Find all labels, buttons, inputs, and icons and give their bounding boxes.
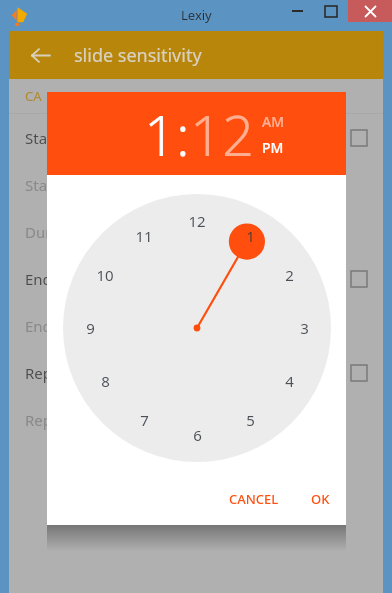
- button[interactable]: End: [9, 302, 383, 349]
- button[interactable]: PM: [262, 138, 284, 157]
- staticText: Sta: [25, 128, 48, 148]
- button[interactable]: Maximize: [314, 0, 348, 22]
- button[interactable]: 12: [181, 205, 213, 237]
- button[interactable]: 10: [89, 259, 121, 291]
- button[interactable]: 3: [288, 312, 320, 344]
- staticText: 5: [246, 410, 255, 430]
- staticText: 8: [101, 371, 110, 391]
- staticText: 11: [135, 226, 153, 246]
- staticText: 4: [285, 371, 294, 391]
- staticText: 7: [140, 410, 149, 430]
- button[interactable]: 8: [89, 365, 121, 397]
- button[interactable]: 2: [273, 259, 305, 291]
- staticText: Lexiy: [181, 6, 212, 24]
- staticText: 3: [300, 318, 309, 338]
- button[interactable]: 9: [74, 312, 106, 344]
- button[interactable]: 1: [144, 96, 176, 172]
- staticText: End: [25, 269, 52, 289]
- staticText: 9: [86, 318, 95, 338]
- staticText: End: [25, 316, 52, 336]
- button[interactable]: End: [9, 255, 383, 302]
- button[interactable]: Rep: [9, 349, 383, 396]
- button[interactable]: 6: [181, 419, 213, 451]
- staticText: CANCEL: [229, 490, 279, 508]
- staticText: 12: [188, 211, 206, 231]
- staticText: Rep: [25, 363, 53, 383]
- button[interactable]: 4: [273, 365, 305, 397]
- button[interactable]: 1: [234, 220, 266, 252]
- staticText: Sta: [25, 175, 48, 195]
- staticText: :: [176, 96, 190, 172]
- button[interactable]: Dur: [9, 208, 383, 255]
- button[interactable]: Sta: [9, 114, 383, 161]
- button[interactable]: 12: [190, 96, 254, 172]
- staticText: slide sensitivity: [74, 43, 202, 68]
- button[interactable]: CANCEL: [219, 481, 289, 517]
- staticText: Dur: [25, 222, 52, 242]
- button[interactable]: Sta: [9, 161, 383, 208]
- staticText: Rep: [25, 410, 53, 430]
- staticText: CA: [25, 87, 42, 105]
- button[interactable]: Close: [348, 0, 392, 22]
- button[interactable]: 11: [128, 220, 160, 252]
- button[interactable]: 5: [234, 404, 266, 436]
- staticText: 6: [193, 425, 202, 445]
- staticText: 1: [246, 226, 255, 246]
- button[interactable]: AM: [262, 112, 285, 131]
- button[interactable]: Rep: [9, 396, 383, 443]
- button[interactable]: Minimize: [280, 0, 314, 22]
- staticText: 10: [96, 265, 114, 285]
- staticText: 2: [285, 265, 294, 285]
- button[interactable]: Back: [25, 40, 55, 70]
- staticText: OK: [311, 490, 330, 508]
- button[interactable]: OK: [301, 481, 340, 517]
- button[interactable]: 7: [128, 404, 160, 436]
